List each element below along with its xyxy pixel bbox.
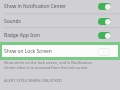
staticText: Sounds bbox=[4, 18, 21, 25]
staticText: Show alerts on the lock screen, and in N… bbox=[4, 60, 92, 65]
button[interactable]: Toggle on bbox=[98, 18, 111, 25]
button[interactable]: Sounds bbox=[0, 14, 120, 29]
button[interactable]: Badge App Icon bbox=[0, 28, 120, 42]
staticText: Badge App Icon bbox=[4, 32, 41, 39]
staticText: Center when it is accessed from the lock… bbox=[4, 65, 89, 70]
button[interactable]: Toggle on bbox=[98, 32, 111, 39]
button[interactable]: Toggle off bbox=[97, 48, 111, 56]
button[interactable]: Toggle on bbox=[98, 3, 111, 10]
staticText: Show in Notification Center bbox=[4, 3, 67, 10]
staticText: ALERT STYLE WHEN UNLOCKED bbox=[4, 78, 62, 83]
button[interactable]: Show on Lock Screen bbox=[0, 42, 120, 60]
button[interactable]: Show in Notification Center bbox=[0, 0, 120, 14]
staticText: Show on Lock Screen bbox=[4, 48, 52, 55]
